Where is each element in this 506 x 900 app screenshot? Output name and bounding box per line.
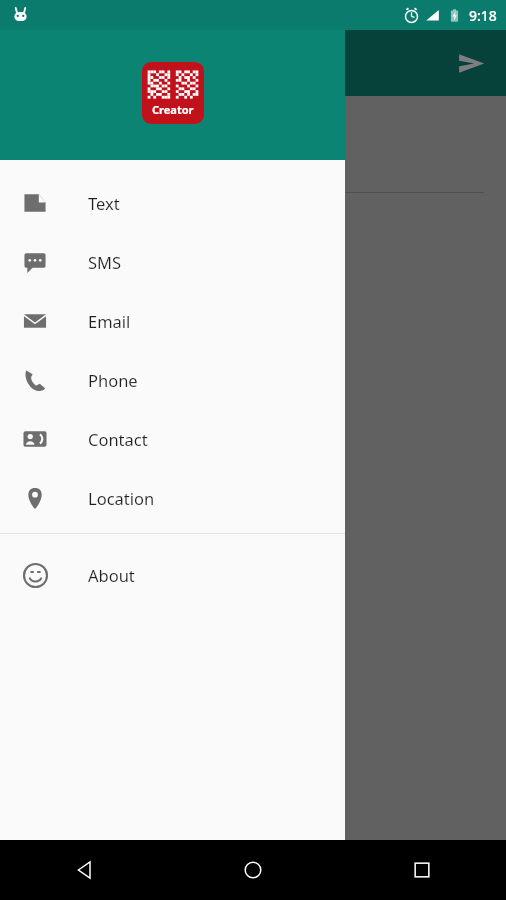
staticText: SMS: [88, 251, 122, 273]
staticText: 9:18: [469, 6, 497, 25]
button[interactable]: About: [0, 545, 345, 604]
staticText: Email: [88, 310, 131, 332]
staticText: Creator: [152, 102, 194, 117]
staticText: Phone: [88, 369, 138, 391]
button[interactable]: QR Creator: [142, 62, 204, 124]
button[interactable]: Home: [229, 846, 277, 894]
button[interactable]: Email: [0, 291, 345, 350]
button[interactable]: SMS: [0, 232, 345, 291]
button[interactable]: Text: [0, 173, 345, 232]
staticText: Contact: [88, 428, 148, 450]
button[interactable]: Send: [450, 42, 492, 84]
button[interactable]: Back: [60, 846, 108, 894]
staticText: Location: [88, 487, 155, 509]
button[interactable]: Contact: [0, 409, 345, 468]
button[interactable]: Recents: [398, 846, 446, 894]
button[interactable]: Location: [0, 468, 345, 527]
button[interactable]: Phone: [0, 350, 345, 409]
staticText: About: [88, 564, 135, 586]
staticText: Text: [88, 192, 120, 214]
